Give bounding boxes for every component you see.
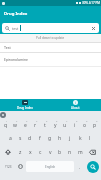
button[interactable]: q xyxy=(2,120,9,130)
button[interactable] xyxy=(16,161,24,172)
button[interactable]: a xyxy=(6,133,14,143)
staticText: 30% 4:17 PM xyxy=(82,1,100,5)
button[interactable]: i xyxy=(50,99,101,111)
button[interactable]: r xyxy=(31,120,39,130)
staticText: 8 xyxy=(76,120,78,123)
staticText: c xyxy=(39,149,42,156)
staticText: 5 xyxy=(46,120,48,123)
staticText: About xyxy=(71,106,80,110)
button[interactable] xyxy=(2,147,14,157)
staticText: y xyxy=(54,122,57,129)
button[interactable]: f xyxy=(36,133,44,143)
button[interactable]: i xyxy=(71,120,79,130)
staticText: q xyxy=(4,122,8,129)
staticText: 3 xyxy=(26,120,28,123)
staticText: u xyxy=(63,122,67,129)
staticText: 0 xyxy=(96,120,98,123)
staticText: English xyxy=(45,165,56,169)
staticText: Epinonolamine xyxy=(4,57,28,62)
staticText: Test xyxy=(4,45,11,50)
staticText: t xyxy=(44,122,46,129)
staticText: f xyxy=(39,135,41,142)
button[interactable]: u xyxy=(61,120,69,130)
staticText: b xyxy=(58,149,62,156)
button[interactable]: g xyxy=(46,133,54,143)
button[interactable]: English xyxy=(26,161,74,172)
staticText: a xyxy=(9,135,12,142)
staticText: m xyxy=(78,149,83,156)
staticText: 9 xyxy=(86,120,88,123)
button[interactable] xyxy=(86,147,99,157)
staticText: o xyxy=(83,122,87,129)
button[interactable]: v xyxy=(46,147,54,157)
button[interactable]: Epinonolamine xyxy=(0,53,101,66)
button[interactable]: c xyxy=(36,147,44,157)
button[interactable]: m xyxy=(76,147,84,157)
button[interactable]: h xyxy=(56,133,64,143)
button[interactable]: ?123 xyxy=(2,161,14,172)
staticText: v xyxy=(49,149,52,156)
button[interactable]: j xyxy=(66,133,74,143)
staticText: d xyxy=(28,135,32,142)
staticText: g xyxy=(48,135,52,142)
button[interactable]: b xyxy=(56,147,64,157)
staticText: e xyxy=(24,122,27,129)
staticText: 6 xyxy=(56,120,58,123)
button[interactable]: Test xyxy=(0,43,101,52)
staticText: 7 xyxy=(66,120,68,123)
staticText: 4 xyxy=(36,120,38,123)
button[interactable]: x xyxy=(26,147,34,157)
staticText: s xyxy=(19,135,22,142)
staticText: i xyxy=(74,122,76,129)
staticText: w xyxy=(13,122,17,129)
button[interactable]: k xyxy=(76,133,84,143)
button[interactable]: t xyxy=(41,120,49,130)
staticText: j xyxy=(69,135,71,142)
button[interactable]: d xyxy=(26,133,34,143)
button[interactable]: n xyxy=(66,147,74,157)
button[interactable]: o xyxy=(81,120,89,130)
button[interactable]: p xyxy=(91,120,99,130)
button[interactable]: s xyxy=(16,133,24,143)
staticText: Drug Index xyxy=(17,106,33,110)
staticText: k xyxy=(79,135,82,142)
staticText: Pull down to update xyxy=(36,36,65,40)
staticText: test xyxy=(12,26,19,31)
button[interactable]: test xyxy=(2,23,99,33)
staticText: 2 xyxy=(16,120,18,123)
button[interactable]: Drug Index xyxy=(0,99,50,111)
button[interactable]: z xyxy=(16,147,24,157)
staticText: p xyxy=(93,122,97,129)
button[interactable]: e xyxy=(21,120,29,130)
button[interactable] xyxy=(86,160,99,173)
staticText: 1 xyxy=(6,120,8,123)
button[interactable]: l xyxy=(86,133,94,143)
staticText: r xyxy=(34,122,37,129)
button[interactable]: w xyxy=(11,120,19,130)
staticText: ?123 xyxy=(5,165,12,169)
staticText: i xyxy=(75,101,76,105)
staticText: Drug Index xyxy=(4,11,28,17)
staticText: h xyxy=(58,135,62,142)
staticText: x xyxy=(29,149,32,156)
staticText: . xyxy=(79,164,81,170)
button[interactable]: . xyxy=(76,161,84,172)
button[interactable]: y xyxy=(51,120,59,130)
staticText: l xyxy=(89,135,91,142)
staticText: z xyxy=(19,149,22,156)
staticText: n xyxy=(68,149,72,156)
